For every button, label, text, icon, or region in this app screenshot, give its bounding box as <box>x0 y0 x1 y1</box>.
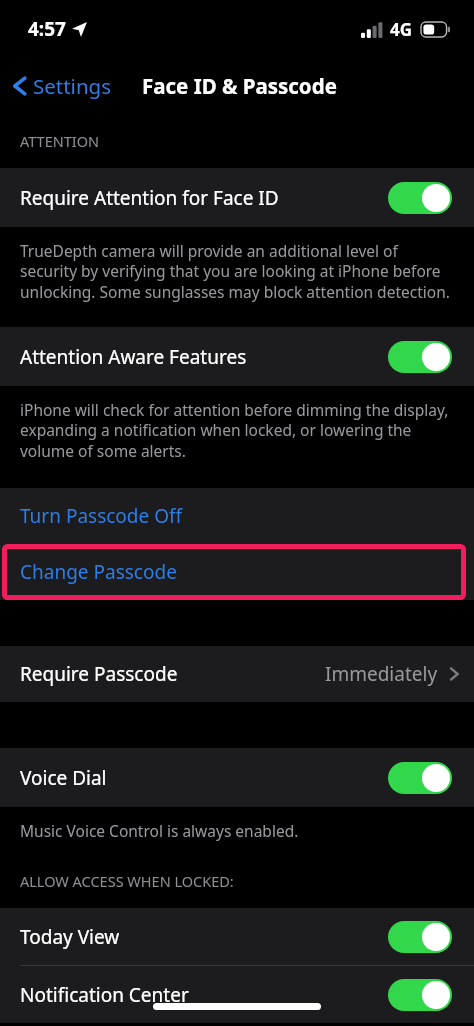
button[interactable]: Toggle on <box>388 979 452 1011</box>
button[interactable]: Settings <box>0 58 120 114</box>
button[interactable]: Notification Center <box>0 966 474 1023</box>
staticText: Face ID & Passcode <box>142 72 337 100</box>
button[interactable]: Today View <box>0 908 474 965</box>
button[interactable]: Toggle on <box>388 182 452 214</box>
staticText: iPhone will check for attention before d… <box>20 399 450 462</box>
staticText: Voice Dial <box>20 765 388 791</box>
button[interactable]: Toggle on <box>388 921 452 953</box>
staticText: Notification Center <box>20 982 388 1008</box>
button[interactable]: Toggle on <box>388 762 452 794</box>
staticText: 4:57 <box>28 16 66 42</box>
button[interactable]: Toggle on <box>388 341 452 373</box>
staticText: Require Passcode <box>20 661 325 687</box>
button[interactable]: Voice Dial <box>0 748 474 807</box>
staticText: Attention Aware Features <box>20 344 388 370</box>
staticText: Immediately <box>325 661 438 687</box>
staticText: 4G <box>390 18 413 41</box>
staticText: ATTENTION <box>20 131 100 151</box>
button[interactable]: Change Passcode <box>0 544 474 600</box>
button[interactable]: Require Attention for Face ID <box>0 168 474 227</box>
button[interactable]: Require Passcode <box>0 646 474 702</box>
staticText: Require Attention for Face ID <box>20 185 388 211</box>
staticText: Turn Passcode Off <box>20 503 183 529</box>
staticText: Today View <box>20 924 388 950</box>
staticText: ALLOW ACCESS WHEN LOCKED: <box>20 871 234 891</box>
staticText: Change Passcode <box>20 559 177 585</box>
button[interactable]: Turn Passcode Off <box>0 488 474 544</box>
staticText: Settings <box>33 72 112 100</box>
button[interactable]: Attention Aware Features <box>0 327 474 386</box>
staticText: Music Voice Control is always enabled. <box>20 820 299 841</box>
staticText: TrueDepth camera will provide an additio… <box>20 240 450 303</box>
